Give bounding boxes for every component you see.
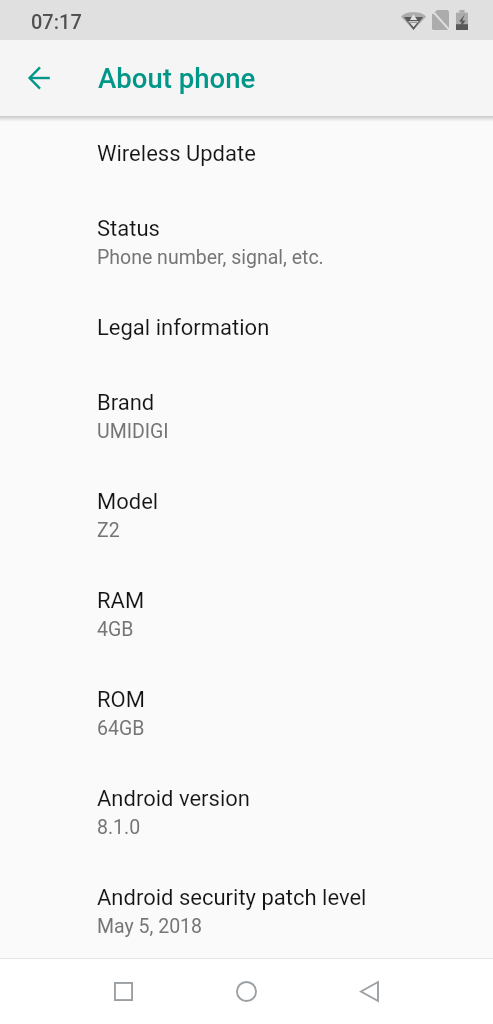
- button[interactable]: Back: [16, 54, 64, 102]
- button[interactable]: Home: [185, 959, 308, 1024]
- button[interactable]: Wireless Update: [0, 117, 493, 192]
- staticText: Model: [97, 489, 159, 515]
- staticText: Brand: [97, 390, 155, 416]
- staticText: About phone: [98, 62, 256, 94]
- button[interactable]: Android security patch level: [0, 861, 493, 958]
- button[interactable]: Recent apps: [62, 959, 185, 1024]
- staticText: May 5, 2018: [97, 915, 203, 938]
- button[interactable]: Back: [308, 959, 431, 1024]
- button[interactable]: Android version: [0, 762, 493, 861]
- staticText: Phone number, signal, etc.: [97, 246, 324, 269]
- staticText: UMIDIGI: [97, 420, 169, 443]
- staticText: 64GB: [97, 717, 145, 740]
- button[interactable]: RAM: [0, 564, 493, 663]
- staticText: Z2: [97, 519, 120, 542]
- button[interactable]: Model: [0, 465, 493, 564]
- staticText: ROM: [97, 687, 145, 713]
- staticText: Wireless Update: [97, 141, 256, 167]
- staticText: Android security patch level: [97, 885, 367, 911]
- staticText: 07:17: [31, 10, 82, 33]
- staticText: Android version: [97, 786, 250, 812]
- staticText: Status: [97, 216, 160, 242]
- button[interactable]: ROM: [0, 663, 493, 762]
- button[interactable]: Brand: [0, 366, 493, 465]
- staticText: 4GB: [97, 618, 134, 641]
- staticText: 8.1.0: [97, 816, 141, 839]
- button[interactable]: Legal information: [0, 291, 493, 366]
- button[interactable]: Status: [0, 192, 493, 291]
- staticText: Legal information: [97, 315, 270, 341]
- staticText: RAM: [97, 588, 145, 614]
